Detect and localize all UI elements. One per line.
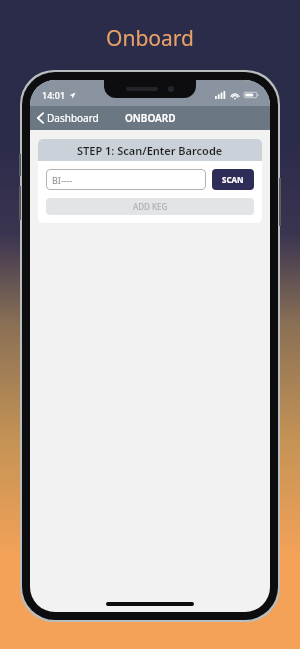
button[interactable]: BI---- [46, 169, 206, 190]
staticText: ADD KEG [133, 201, 168, 212]
staticText: ONBOARD [125, 111, 176, 125]
staticText: STEP 1: Scan/Enter Barcode [77, 143, 223, 158]
button[interactable]: ADD KEG [46, 198, 254, 215]
staticText: 14:01 [42, 89, 66, 101]
staticText: Onboard [106, 24, 194, 53]
staticText: SCAN [222, 174, 244, 185]
staticText: BI---- [52, 174, 73, 186]
button[interactable]: SCAN [212, 169, 254, 190]
staticText: Dashboard [47, 111, 99, 125]
button[interactable]: Dashboard [30, 108, 105, 128]
